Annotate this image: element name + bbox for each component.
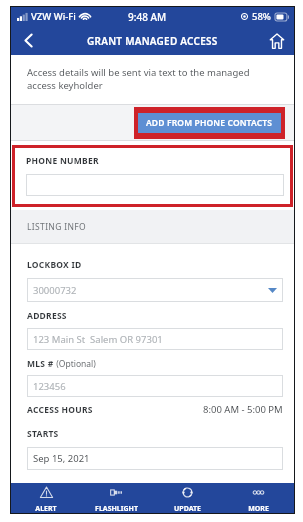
staticText: Sep 15, 2021: [33, 452, 90, 465]
staticText: ACCESS HOURS: [27, 404, 93, 416]
staticText: (Optional): [54, 358, 96, 370]
staticText: MLS #: [27, 358, 54, 370]
button[interactable]: ADD FROM PHONE CONTACTS: [138, 113, 281, 133]
staticText: ADD FROM PHONE CONTACTS: [146, 117, 273, 129]
button[interactable]: Back: [11, 26, 45, 55]
button[interactable]: [26, 174, 284, 196]
button[interactable]: FLASHLIGHT: [81, 483, 152, 513]
staticText: Access details will be sent via text to …: [27, 66, 250, 92]
staticText: GRANT MANAGED ACCESS: [87, 34, 218, 48]
staticText: 123456: [33, 380, 66, 393]
staticText: 123 Main St Salem OR 97301: [33, 333, 163, 346]
staticText: STARTS: [27, 428, 59, 440]
button[interactable]: 30000732: [27, 278, 283, 302]
button[interactable]: 123 Main St Salem OR 97301: [27, 328, 283, 350]
button[interactable]: MORE: [223, 483, 294, 513]
button[interactable]: 123456: [27, 375, 283, 397]
staticText: VZW Wi-Fi: [31, 10, 76, 23]
staticText: 8:00 AM - 5:00 PM: [203, 403, 283, 416]
staticText: ALERT: [35, 504, 57, 513]
staticText: 30000732: [33, 284, 77, 297]
staticText: ADDRESS: [27, 310, 67, 322]
button[interactable]: Home: [260, 26, 294, 55]
staticText: PHONE NUMBER: [26, 155, 99, 167]
staticText: 9:48 AM: [128, 10, 167, 24]
button[interactable]: UPDATE: [152, 483, 223, 513]
button[interactable]: Sep 15, 2021: [27, 447, 283, 470]
staticText: MORE: [248, 504, 269, 513]
staticText: UPDATE: [174, 504, 201, 513]
staticText: LISTING INFO: [27, 221, 87, 233]
staticText: 58%: [252, 10, 271, 23]
staticText: LOCKBOX ID: [27, 259, 82, 271]
button[interactable]: ALERT: [11, 483, 81, 513]
staticText: FLASHLIGHT: [95, 504, 138, 513]
